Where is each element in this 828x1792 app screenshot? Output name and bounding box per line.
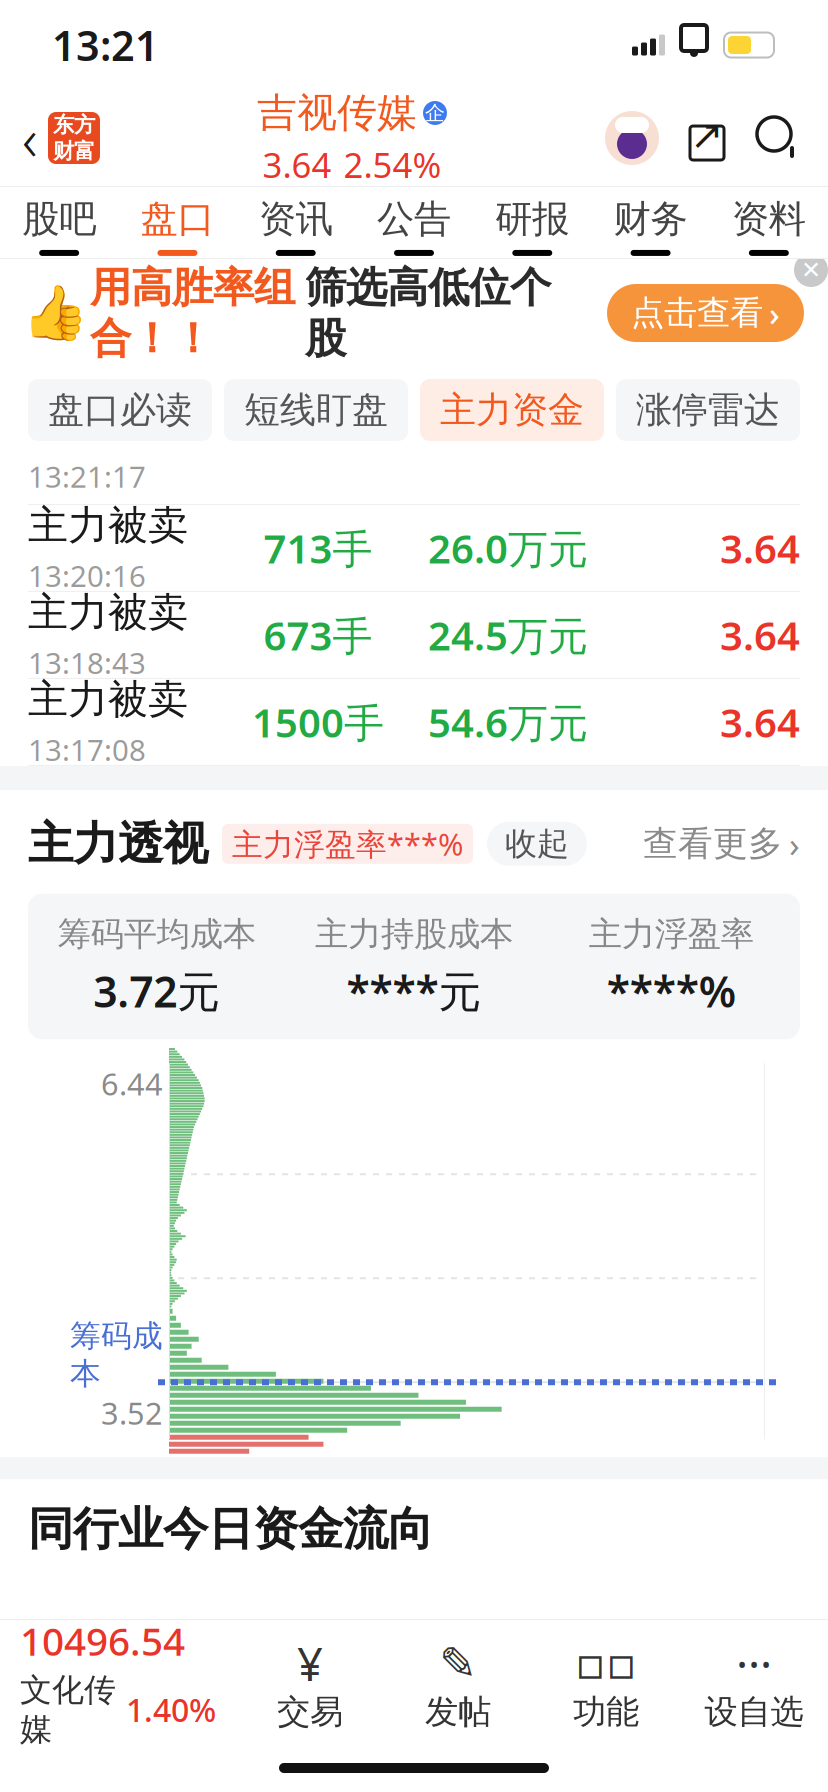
staticText: 主力透视 <box>28 816 208 872</box>
staticText: ****元 <box>346 963 481 1019</box>
button[interactable]: 吉视传媒 <box>257 88 447 188</box>
button[interactable]: 关闭广告 <box>794 253 828 287</box>
staticText: 筹码平均成本 <box>58 914 256 954</box>
staticText: 短线盯盘 <box>244 388 388 432</box>
button[interactable]: 主力被卖 <box>0 592 828 679</box>
staticText: 673手 <box>263 608 372 661</box>
staticText: ↗ <box>690 112 724 158</box>
staticText: › <box>789 821 800 867</box>
staticText: 盘口 <box>140 196 214 242</box>
staticText: 东方 <box>53 112 95 138</box>
button[interactable]: 涨停雷达 <box>616 379 800 441</box>
staticText: 主力被卖 <box>28 501 188 550</box>
staticText: ▫▫ <box>575 1638 637 1689</box>
button[interactable]: 分享 <box>684 114 730 162</box>
button[interactable]: 研报 <box>473 182 591 264</box>
staticText: 6.44 <box>101 1063 163 1104</box>
staticText: 13:21 <box>52 18 159 72</box>
button[interactable]: 盘口必读 <box>28 379 212 441</box>
staticText: 1.40% <box>126 1688 216 1731</box>
button[interactable]: 主力资金 <box>420 379 604 441</box>
staticText: 公告 <box>377 196 451 242</box>
staticText: 主力浮盈率 <box>589 914 754 954</box>
staticText: 👍 <box>22 282 88 343</box>
staticText: 企 <box>425 101 445 125</box>
staticText: 用高胜率组合！！ <box>90 262 295 364</box>
button[interactable]: 点击查看 <box>607 284 804 342</box>
staticText: › <box>769 291 780 335</box>
staticText: 24.5万元 <box>428 608 588 661</box>
staticText: ✎ <box>439 1638 477 1689</box>
button[interactable]: ▫▫ <box>532 1631 680 1732</box>
staticText: 54.6万元 <box>428 695 588 748</box>
button[interactable]: 主力被卖 <box>0 505 828 592</box>
staticText: 涨停雷达 <box>636 388 780 432</box>
button[interactable]: 盘口 <box>118 182 237 264</box>
button[interactable]: 公告 <box>355 182 473 264</box>
staticText: 13:21:17 <box>28 457 146 496</box>
staticText: 吉视传媒 <box>257 88 417 137</box>
staticText: ¥ <box>297 1633 323 1694</box>
staticText: 筛选高低位个股 <box>305 262 551 364</box>
staticText: 主力浮盈率***% <box>232 823 463 864</box>
staticText: 股吧 <box>22 196 96 242</box>
button[interactable]: 资讯 <box>237 182 355 264</box>
staticText: 主力被卖 <box>28 675 188 724</box>
button[interactable]: 短线盯盘 <box>224 379 408 441</box>
button[interactable]: 搜索 <box>754 114 802 162</box>
button[interactable]: 财务 <box>591 182 710 264</box>
button[interactable]: 收起 <box>487 822 587 866</box>
staticText: 3.52 <box>101 1392 163 1433</box>
staticText: 713手 <box>263 521 372 574</box>
staticText: 主力被卖 <box>28 588 188 637</box>
staticText: 13:17:08 <box>28 730 146 769</box>
button[interactable]: 资料 <box>710 182 828 264</box>
staticText: 文化传媒 <box>20 1670 116 1749</box>
staticText: 交易 <box>277 1691 343 1732</box>
staticText: 1500手 <box>252 695 384 748</box>
staticText: 13:20:16 <box>28 556 146 595</box>
staticText: 26.0万元 <box>428 521 588 574</box>
staticText: ****% <box>607 963 736 1019</box>
button[interactable]: ✎ <box>384 1631 532 1732</box>
staticText: 主力资金 <box>440 388 584 432</box>
staticText: 资讯 <box>259 196 333 242</box>
staticText: 3.64 <box>720 521 800 574</box>
staticText: 筹码成本 <box>70 1317 163 1392</box>
staticText: 财富 <box>53 138 95 164</box>
staticText: 10496.54 <box>20 1615 185 1666</box>
staticText: ✕ <box>801 256 821 284</box>
staticText: 财务 <box>614 196 688 242</box>
button[interactable]: 主力被卖 <box>0 679 828 766</box>
staticText: 3.72元 <box>93 963 220 1019</box>
staticText: 2.54% <box>343 141 441 187</box>
staticText: 功能 <box>573 1691 639 1732</box>
button[interactable]: 返回 <box>0 93 100 183</box>
staticText: 主力持股成本 <box>315 914 513 954</box>
staticText: 3.64 <box>720 608 800 661</box>
staticText: ··· <box>736 1633 772 1694</box>
button[interactable]: 查看更多 <box>643 821 800 867</box>
staticText: 研报 <box>495 196 569 242</box>
button[interactable]: 用户头像 <box>604 108 660 168</box>
staticText: 查看更多 <box>643 822 783 865</box>
staticText: 3.64 <box>262 141 331 187</box>
staticText: 13:18:43 <box>28 643 146 682</box>
button[interactable]: 股吧 <box>0 182 118 264</box>
staticText: ‹ <box>22 99 38 177</box>
button[interactable]: ¥ <box>236 1631 384 1732</box>
staticText: 盘口必读 <box>48 388 192 432</box>
staticText: 发帖 <box>425 1691 491 1732</box>
staticText: 资料 <box>732 196 806 242</box>
staticText: 点击查看 <box>631 292 763 333</box>
button[interactable]: 10496.54 <box>0 1615 236 1749</box>
staticText: 收起 <box>505 824 569 863</box>
staticText: 设自选 <box>704 1691 803 1732</box>
staticText: 同行业今日资金流向 <box>28 1501 433 1557</box>
staticText: 3.64 <box>720 695 800 748</box>
button[interactable]: ··· <box>680 1631 828 1732</box>
